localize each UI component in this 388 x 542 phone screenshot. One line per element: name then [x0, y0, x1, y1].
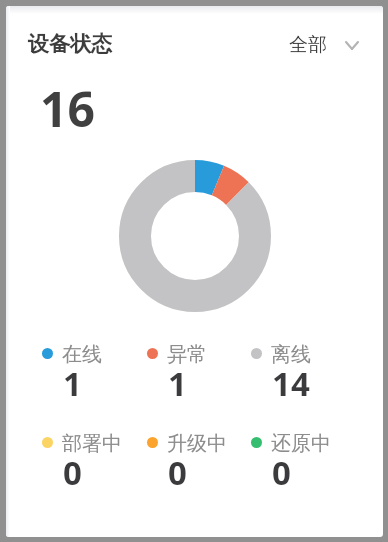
staticText: 异常: [167, 342, 207, 367]
staticText: 0: [63, 450, 82, 495]
staticText: 14: [272, 361, 310, 406]
button[interactable]: 异常: [146, 339, 244, 405]
staticText: 1: [63, 361, 82, 406]
staticText: 部署中: [62, 431, 122, 456]
staticText: 还原中: [271, 431, 331, 456]
staticText: 设备状态: [28, 31, 112, 57]
staticText: 0: [272, 450, 291, 495]
button[interactable]: 还原中: [250, 428, 348, 494]
other: Expand filter: [345, 41, 359, 50]
other: Device status chart: [119, 160, 271, 312]
staticText: 升级中: [167, 431, 227, 456]
staticText: 离线: [271, 342, 311, 367]
button[interactable]: 在线: [41, 339, 139, 405]
staticText: 16: [40, 76, 95, 141]
button[interactable]: 升级中: [146, 428, 244, 494]
button[interactable]: 离线: [250, 339, 348, 405]
staticText: 1: [168, 361, 187, 406]
staticText: 在线: [62, 342, 102, 367]
staticText: 0: [168, 450, 187, 495]
button[interactable]: 全部: [282, 26, 372, 64]
staticText: 全部: [289, 33, 327, 57]
button[interactable]: 部署中: [41, 428, 139, 494]
